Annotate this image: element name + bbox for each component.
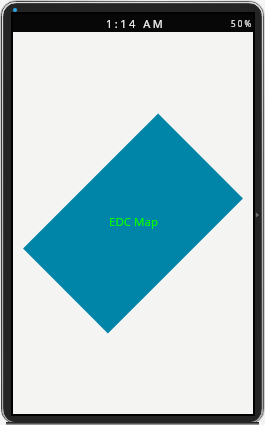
staticText: 1:14 AM [106,16,166,31]
staticText: EDC Map [101,189,167,255]
button[interactable]: EDC Map [23,113,243,333]
button[interactable]: Next [253,211,261,219]
staticText: 50% [231,18,254,29]
